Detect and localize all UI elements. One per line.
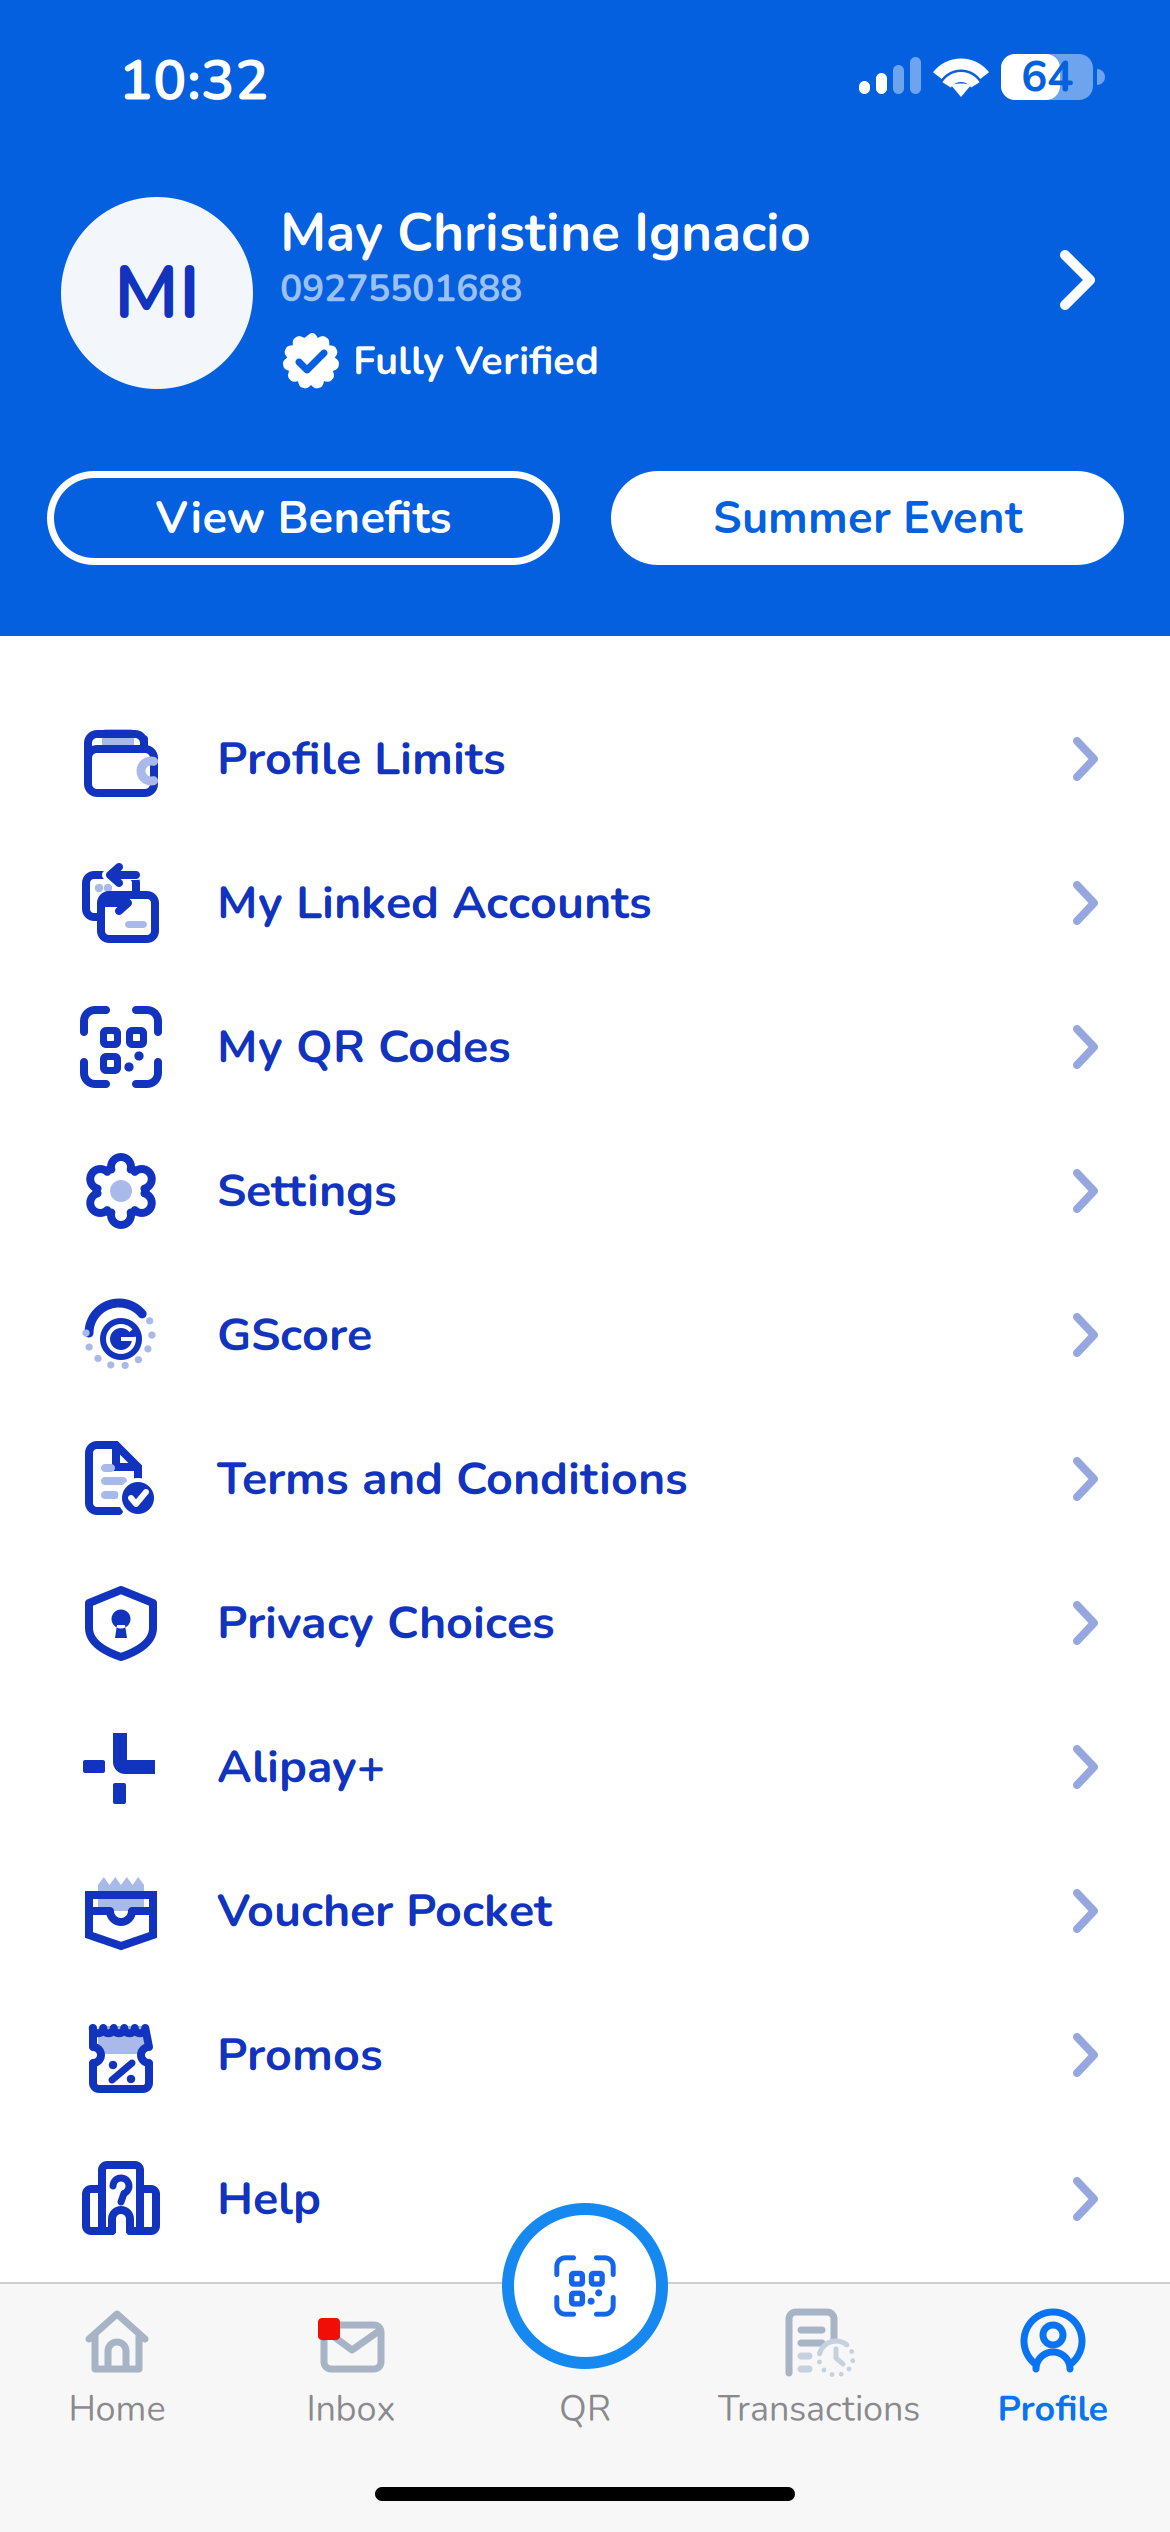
staticText: Privacy Choices xyxy=(217,1591,555,1655)
button[interactable]: Home xyxy=(0,2288,234,2448)
staticText: Alipay+ xyxy=(217,1735,385,1799)
staticText: MI xyxy=(114,242,200,344)
button[interactable]: Help xyxy=(0,2127,1170,2271)
button[interactable]: QR xyxy=(468,2288,702,2448)
staticText: Inbox xyxy=(306,2384,395,2433)
staticText: Fully Verified xyxy=(353,334,599,388)
button[interactable]: View Benefits xyxy=(47,471,560,565)
staticText: My QR Codes xyxy=(217,1015,511,1079)
staticText: View Benefits xyxy=(155,487,451,549)
button[interactable]: My QR Codes xyxy=(0,975,1170,1119)
button[interactable]: Settings xyxy=(0,1119,1170,1263)
staticText: 09275501688 xyxy=(280,263,522,314)
staticText: Home xyxy=(68,2384,165,2433)
staticText: GScore xyxy=(217,1303,372,1367)
staticText: Profile xyxy=(997,2384,1108,2433)
staticText: Profile Limits xyxy=(217,727,506,791)
button[interactable]: MI xyxy=(0,180,1170,420)
staticText: Terms and Conditions xyxy=(217,1447,688,1511)
button[interactable]: GScore xyxy=(0,1263,1170,1407)
button[interactable]: Voucher Pocket xyxy=(0,1839,1170,1983)
button[interactable]: Alipay+ xyxy=(0,1695,1170,1839)
staticText: Help xyxy=(217,2167,321,2231)
staticText: My Linked Accounts xyxy=(217,871,652,935)
staticText: 64 xyxy=(1021,47,1073,107)
staticText: Promos xyxy=(217,2023,383,2087)
staticText: May Christine Ignacio xyxy=(280,197,811,269)
button[interactable]: Summer Event xyxy=(611,471,1124,565)
button[interactable]: Terms and Conditions xyxy=(0,1407,1170,1551)
staticText: 10:32 xyxy=(119,43,269,119)
button[interactable]: Profile xyxy=(936,2288,1170,2448)
staticText: Voucher Pocket xyxy=(217,1879,552,1943)
button[interactable]: Promos xyxy=(0,1983,1170,2127)
button[interactable]: QR code scanner xyxy=(502,2203,668,2369)
button[interactable]: Inbox xyxy=(234,2288,468,2448)
staticText: Transactions xyxy=(718,2384,920,2433)
staticText: Summer Event xyxy=(713,487,1022,549)
button[interactable]: Profile Limits xyxy=(0,687,1170,831)
button[interactable]: My Linked Accounts xyxy=(0,831,1170,975)
button[interactable]: Privacy Choices xyxy=(0,1551,1170,1695)
staticText: QR xyxy=(559,2384,611,2433)
staticText: Settings xyxy=(217,1159,397,1223)
button[interactable]: Transactions xyxy=(702,2288,936,2448)
